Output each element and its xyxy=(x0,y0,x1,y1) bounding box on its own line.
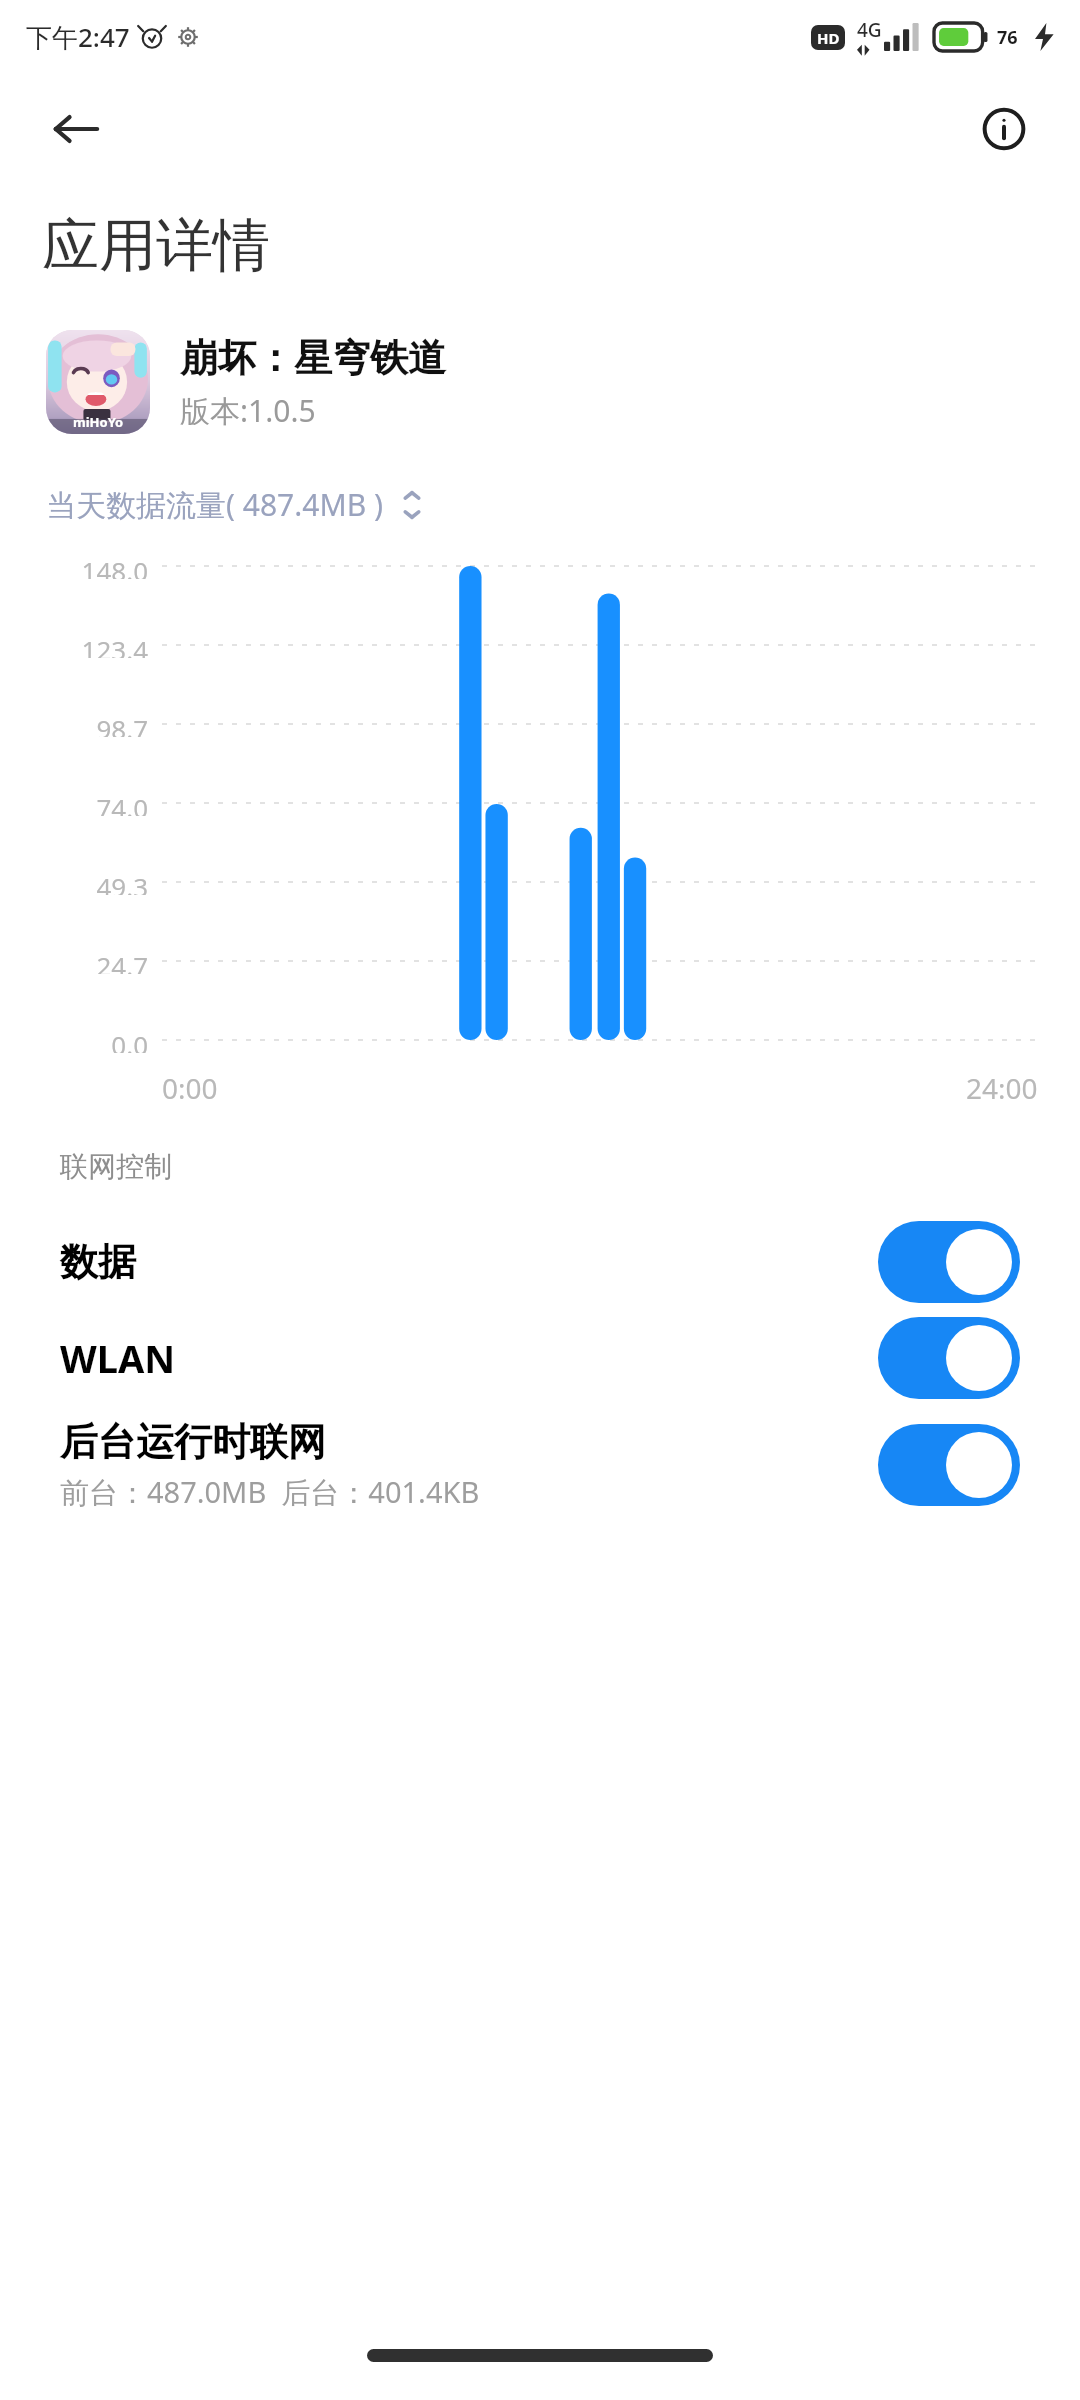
staticText: 前台：487.0MB 后台：401.4KB xyxy=(60,1472,480,1512)
button[interactable] xyxy=(878,1424,1020,1506)
button[interactable] xyxy=(878,1317,1020,1399)
staticText: 98.7 xyxy=(96,711,148,737)
staticText: 4G xyxy=(857,17,882,43)
staticText: 版本:1.0.5 xyxy=(180,390,316,431)
button[interactable]: Info xyxy=(968,93,1040,165)
staticText: 0:00 xyxy=(162,1069,218,1107)
staticText: 数据 xyxy=(60,1238,136,1286)
staticText: 后台运行时联网 xyxy=(60,1418,326,1466)
staticText: 123.4 xyxy=(81,632,148,658)
button[interactable]: Back xyxy=(40,93,112,165)
staticText: 76 xyxy=(997,25,1018,50)
staticText: 148.0 xyxy=(81,553,148,579)
staticText: 当天数据流量( 487.4MB ) xyxy=(46,484,383,525)
button[interactable]: WLAN xyxy=(0,1310,1080,1406)
staticText: 0.0 xyxy=(111,1027,148,1053)
button[interactable] xyxy=(878,1221,1020,1303)
staticText: 24:00 xyxy=(966,1069,1038,1107)
button[interactable]: 数据 xyxy=(0,1214,1080,1310)
staticText: 崩坏：星穹铁道 xyxy=(180,334,446,382)
staticText: 24.7 xyxy=(96,948,148,974)
staticText: HD xyxy=(817,28,840,48)
staticText: 下午2:47 xyxy=(26,19,130,55)
staticText: 联网控制 xyxy=(60,1149,172,1184)
staticText: 应用详情 xyxy=(42,210,270,282)
button[interactable]: 当天数据流量( 487.4MB ) xyxy=(46,484,425,525)
staticText: 49.3 xyxy=(96,869,148,895)
staticText: WLAN xyxy=(60,1332,176,1384)
staticText: 74.0 xyxy=(96,790,148,816)
staticText: miHoYo xyxy=(73,413,124,431)
button[interactable]: 后台运行时联网 xyxy=(0,1406,1080,1524)
